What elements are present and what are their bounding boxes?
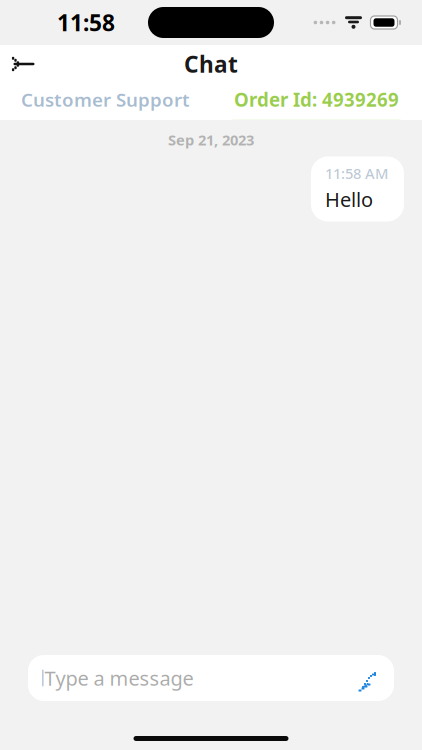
staticText: Customer Support (21, 87, 190, 112)
staticText: Sep 21, 2023 (168, 130, 254, 149)
button[interactable]: Order Id: 4939269 (211, 83, 422, 120)
button[interactable]: Send (350, 659, 388, 697)
staticText: 11:58 AM (325, 163, 388, 183)
button[interactable]: Customer Support (0, 83, 211, 120)
staticText: Type a message (45, 665, 194, 691)
staticText: Chat (184, 49, 238, 79)
button[interactable]: Back (0, 45, 46, 83)
staticText: Order Id: 4939269 (234, 87, 399, 112)
staticText: 11:58 (57, 7, 115, 37)
staticText: Hello (325, 186, 373, 213)
